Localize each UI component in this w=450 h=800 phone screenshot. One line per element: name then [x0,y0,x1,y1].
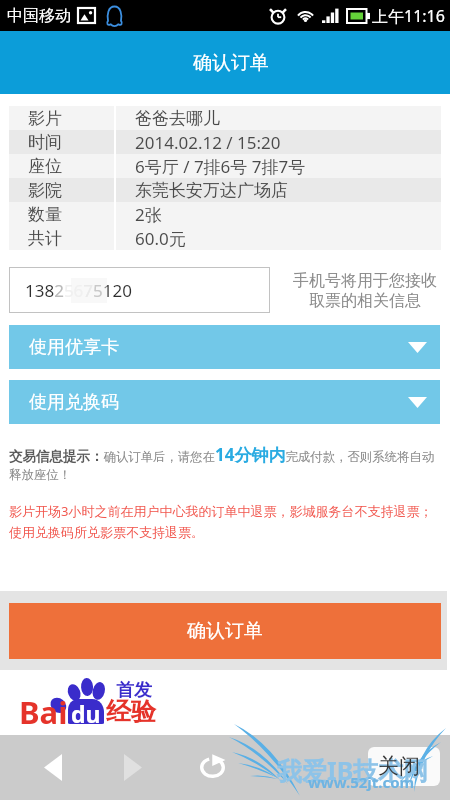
staticText: 中国移动 [7,6,71,26]
staticText: 6号厅 / 7排6号 7排7号 [135,155,306,178]
staticText: 60.0元 [135,227,186,250]
staticText: 时间 [28,132,62,153]
staticText: 关闭 [378,753,420,779]
staticText: 确认订单 [193,51,269,75]
staticText: 手机号将用于您接收取票的相关信息 [289,271,441,311]
staticText: Bai [19,691,68,733]
staticText: 影院 [28,180,62,201]
staticText: 2014.02.12 / 15:20 [135,131,281,154]
staticText: www.52jt.com [308,772,415,792]
button[interactable]: Close ad [368,747,440,786]
button[interactable]: Refresh [173,735,251,800]
staticText: 使用兑换码 [29,391,119,414]
staticText: 影片 [28,108,62,129]
staticText: 影片开场3小时之前在用户中心我的订单中退票，影城服务台不支持退票；使用兑换码所兑… [9,502,441,541]
staticText: 座位 [28,156,62,177]
staticText: 确认订单 [187,619,263,643]
button[interactable]: 使用兑换码 [9,380,440,424]
staticText: du [71,698,101,729]
staticText: 经验 [106,696,156,727]
button[interactable]: Forward [94,735,172,800]
staticText: 交易信息提示：确认订单后，请您在14分钟内完成付款，否则系统将自动释放座位！ [9,443,441,483]
staticText: 上午11:16 [372,5,445,27]
staticText: 首发 [116,679,152,702]
staticText: 使用优享卡 [29,336,119,359]
staticText: 13825675120 [25,279,132,302]
staticText: 东莞长安万达广场店 [135,180,288,201]
staticText: 2张 [135,203,162,226]
staticText: 爸爸去哪儿 [135,108,220,129]
button[interactable]: Back [14,735,92,800]
staticText: 我爱IB技术网 [277,753,429,787]
staticText: 共计 [28,228,62,249]
button[interactable]: 13825675120 [9,267,270,313]
button[interactable]: 使用优享卡 [9,325,440,369]
staticText: 数量 [28,204,62,225]
button[interactable]: 确认订单 [9,603,441,659]
